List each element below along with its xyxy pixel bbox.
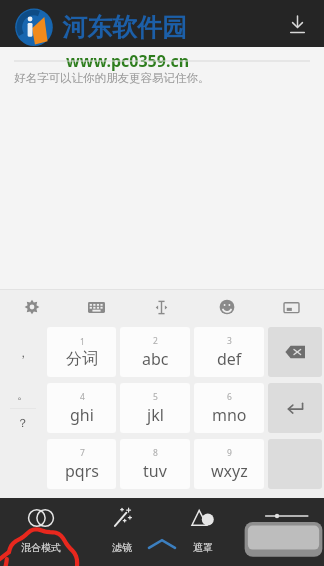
button[interactable]: Clipboard xyxy=(259,290,324,324)
staticText: abc xyxy=(142,348,169,370)
staticText: pqrs xyxy=(65,460,99,482)
button[interactable]: 3 xyxy=(194,327,264,377)
staticText: 6 xyxy=(227,391,232,403)
staticText: 7 xyxy=(80,447,85,459)
button[interactable]: 混合模式 xyxy=(0,498,81,558)
staticText: 好名字可以让你的朋友更容易记住你。 xyxy=(14,71,210,85)
staticText: wxyz xyxy=(211,460,248,482)
staticText: www.pc0359.cn xyxy=(66,50,190,72)
staticText: 4 xyxy=(80,391,85,403)
button[interactable]: 5 xyxy=(120,383,190,433)
staticText: 河东软件园 xyxy=(62,12,187,43)
button[interactable]: 滤镜 xyxy=(81,498,162,558)
button[interactable]: ， xyxy=(0,325,45,379)
staticText: 遮罩 xyxy=(193,541,213,554)
button[interactable]: 4 xyxy=(47,383,116,433)
button[interactable]: 9 xyxy=(194,439,264,489)
staticText: 3 xyxy=(227,335,232,347)
button[interactable]: 2 xyxy=(120,327,190,377)
staticText: 8 xyxy=(153,447,158,459)
staticText: jkl xyxy=(147,404,164,426)
button[interactable]: Expand xyxy=(144,534,180,554)
staticText: mno xyxy=(212,404,247,426)
button[interactable]: 8 xyxy=(120,439,190,489)
button[interactable]: Backspace xyxy=(268,327,322,377)
staticText: 混合模式 xyxy=(21,541,61,554)
button[interactable]: Back xyxy=(6,0,46,40)
staticText: 2 xyxy=(153,335,158,347)
button[interactable]: 6 xyxy=(194,383,264,433)
button[interactable]: 1 xyxy=(47,327,116,377)
button[interactable]: Settings xyxy=(0,290,64,324)
staticText: def xyxy=(217,348,242,370)
staticText: 1 xyxy=(80,336,85,348)
button[interactable]: Download xyxy=(278,5,316,43)
button[interactable]: Enter xyxy=(268,383,322,433)
staticText: ， xyxy=(17,345,29,360)
staticText: ？ xyxy=(17,415,29,430)
button[interactable]: Adjust xyxy=(243,498,324,558)
button[interactable]: 遮罩 xyxy=(162,498,243,558)
staticText: 滤镜 xyxy=(112,541,132,554)
staticText: ghi xyxy=(70,404,94,426)
staticText: 9 xyxy=(227,447,232,459)
button[interactable]: 7 xyxy=(47,439,116,489)
button[interactable]: 。 xyxy=(0,381,45,435)
button[interactable]: Keyboard layout xyxy=(64,290,129,324)
button[interactable]: Move cursor xyxy=(129,290,194,324)
staticText: tuv xyxy=(143,460,167,482)
button[interactable]: Emoji xyxy=(194,290,259,324)
staticText: 5 xyxy=(153,391,158,403)
staticText: 。 xyxy=(17,387,29,402)
staticText: 分词 xyxy=(66,349,98,369)
